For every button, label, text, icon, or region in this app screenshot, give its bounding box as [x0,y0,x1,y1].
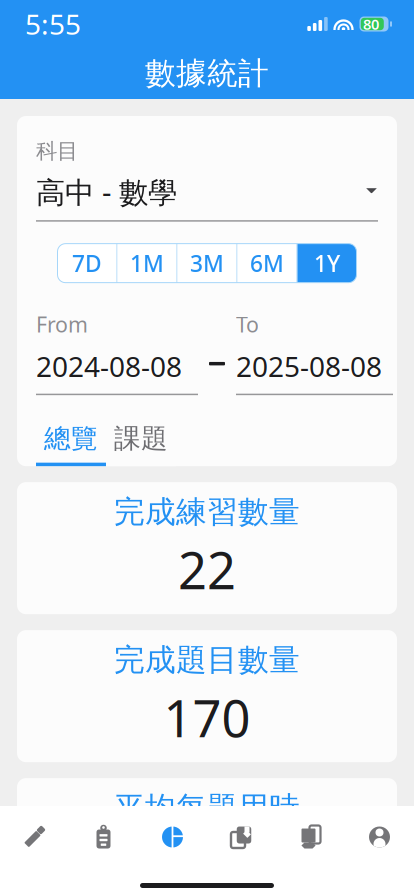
button[interactable]: Statistics [138,806,207,868]
staticText: 22 [178,536,236,603]
staticText: 5:55 [25,5,81,43]
button[interactable]: 總覽 [36,415,106,466]
staticText: 71s [166,832,248,896]
staticText: 7D [72,248,102,278]
staticText: 80 [363,14,379,34]
button[interactable]: Practice [0,806,69,868]
button[interactable]: 7D [57,244,116,283]
staticText: 2024-08-08 [36,347,182,385]
button[interactable]: 1M [117,244,176,283]
staticText: To [236,310,259,338]
staticText: 6M [250,248,284,278]
button[interactable]: 高中 - 數學 [17,164,397,222]
staticText: 2025-08-08 [236,347,382,385]
button[interactable]: 課題 [106,415,176,466]
staticText: 170 [163,684,250,751]
staticText: 高中 - 數學 [36,172,177,211]
button[interactable]: 1Y [297,244,356,283]
button[interactable]: Profile [345,806,414,868]
button[interactable]: 3M [177,244,236,283]
staticText: From [36,310,88,338]
button[interactable]: Bookmarks [276,806,345,868]
staticText: 1M [130,248,164,278]
staticText: 平均每題用時 [114,789,300,827]
button[interactable]: Assignments [69,806,138,868]
staticText: 1Y [314,248,340,278]
staticText: 課題 [114,422,168,455]
staticText: 數據統計 [145,55,269,92]
staticText: 完成練習數量 [114,493,300,531]
button[interactable]: To [236,310,393,395]
staticText: 科目 [36,138,78,164]
button[interactable]: 6M [237,244,296,283]
staticText: 完成題目數量 [114,641,300,679]
button[interactable]: Library [207,806,276,868]
button[interactable]: From [36,310,198,395]
staticText: 3M [190,248,224,278]
staticText: 總覽 [44,422,98,455]
